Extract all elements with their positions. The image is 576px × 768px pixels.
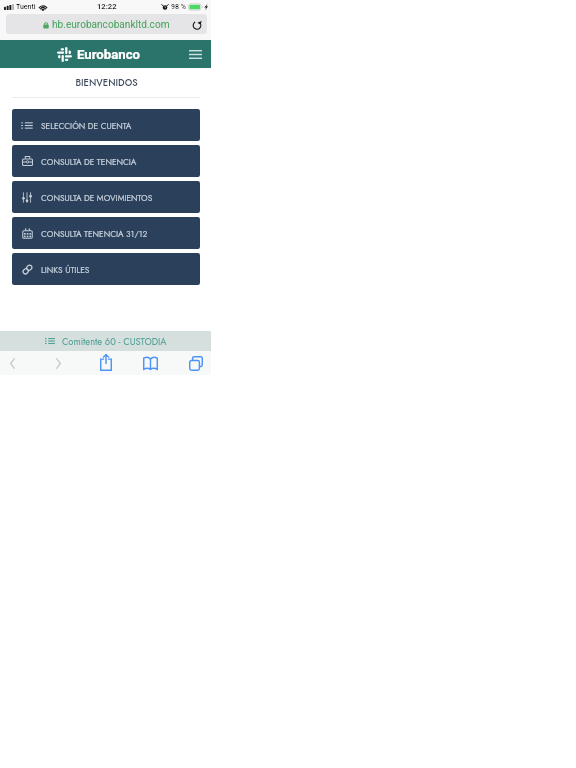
button[interactable]: Back bbox=[1, 351, 24, 375]
button[interactable]: LINKS ÚTILES bbox=[12, 253, 200, 285]
button[interactable]: Comitente 60 - CUSTODIA bbox=[0, 331, 211, 351]
staticText: CONSULTA DE MOVIMIENTOS bbox=[41, 192, 153, 204]
button[interactable]: Tabs bbox=[184, 351, 207, 375]
button[interactable]: Reload page bbox=[191, 19, 202, 30]
button[interactable]: Bookmarks bbox=[139, 351, 162, 375]
button[interactable]: Forward bbox=[47, 351, 70, 375]
button[interactable]: SELECCIÓN DE CUENTA bbox=[12, 109, 200, 141]
button[interactable]: CONSULTA DE TENENCIA bbox=[12, 145, 200, 177]
staticText: 12:22 bbox=[97, 2, 117, 11]
button[interactable]: CONSULTA DE MOVIMIENTOS bbox=[12, 181, 200, 213]
staticText: Eurobanco bbox=[77, 47, 140, 62]
button[interactable]: Open menu bbox=[187, 46, 203, 62]
staticText: hb.eurobancobankltd.com bbox=[52, 19, 170, 31]
staticText: Tuenti bbox=[16, 3, 36, 11]
staticText: LINKS ÚTILES bbox=[41, 264, 90, 276]
staticText: SELECCIÓN DE CUENTA bbox=[41, 120, 132, 132]
staticText: BIENVENIDOS bbox=[1, 76, 212, 90]
staticText: CONSULTA DE TENENCIA bbox=[41, 156, 137, 168]
button[interactable]: Share bbox=[94, 351, 117, 375]
button[interactable]: CONSULTA TENENCIA 31/12 bbox=[12, 217, 200, 249]
staticText: Comitente 60 - CUSTODIA bbox=[62, 335, 167, 348]
staticText: 98 % bbox=[171, 3, 186, 11]
staticText: CONSULTA TENENCIA 31/12 bbox=[41, 228, 148, 240]
button[interactable]: hb.eurobancobankltd.com bbox=[6, 14, 207, 34]
